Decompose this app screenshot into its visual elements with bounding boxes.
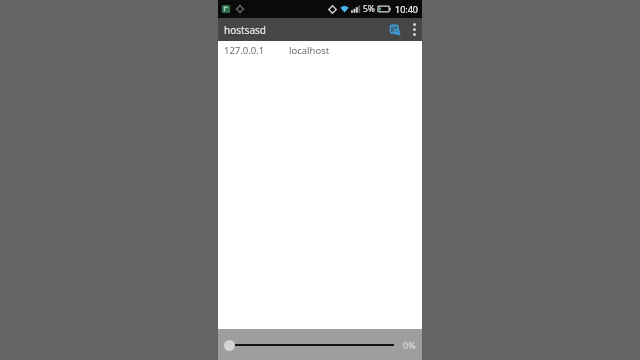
button[interactable]: More options [406,18,422,41]
staticText: localhost [289,44,330,57]
staticText: hostsasd [224,23,266,37]
staticText: 127.0.0.1 [224,44,265,57]
button[interactable]: 127.0.0.1 [218,43,422,59]
staticText: 0% [403,339,416,351]
staticText: 5% [363,3,375,15]
button[interactable]: Progress slider [224,337,398,353]
button[interactable]: Search hosts [384,19,406,41]
staticText: 10:40 [395,3,419,15]
